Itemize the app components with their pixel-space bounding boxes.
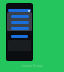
staticText: Instant Design — [22, 64, 43, 68]
button[interactable]: List item — [11, 15, 29, 18]
button[interactable]: List item — [11, 27, 29, 30]
button[interactable]: Search — [8, 9, 31, 12]
button[interactable]: Action — [11, 35, 28, 38]
button[interactable]: List item — [11, 21, 29, 24]
